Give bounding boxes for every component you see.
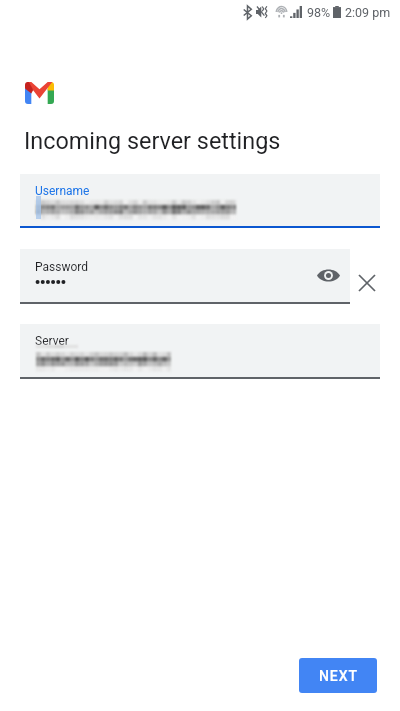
staticText: 98%	[307, 5, 331, 20]
button[interactable]: Show password	[317, 268, 340, 283]
button[interactable]: Username	[20, 174, 380, 226]
button[interactable]: NEXT	[299, 658, 377, 693]
staticText: NEXT	[319, 668, 358, 684]
staticText: 2:09 pm	[345, 5, 391, 20]
staticText: Incoming server settings	[24, 127, 281, 154]
staticText: Server	[35, 334, 69, 348]
button[interactable]: Server	[20, 324, 380, 377]
button[interactable]: Clear	[355, 271, 379, 295]
staticText: Password	[35, 260, 89, 274]
staticText: Username	[35, 184, 90, 198]
button[interactable]: Password	[20, 249, 350, 302]
